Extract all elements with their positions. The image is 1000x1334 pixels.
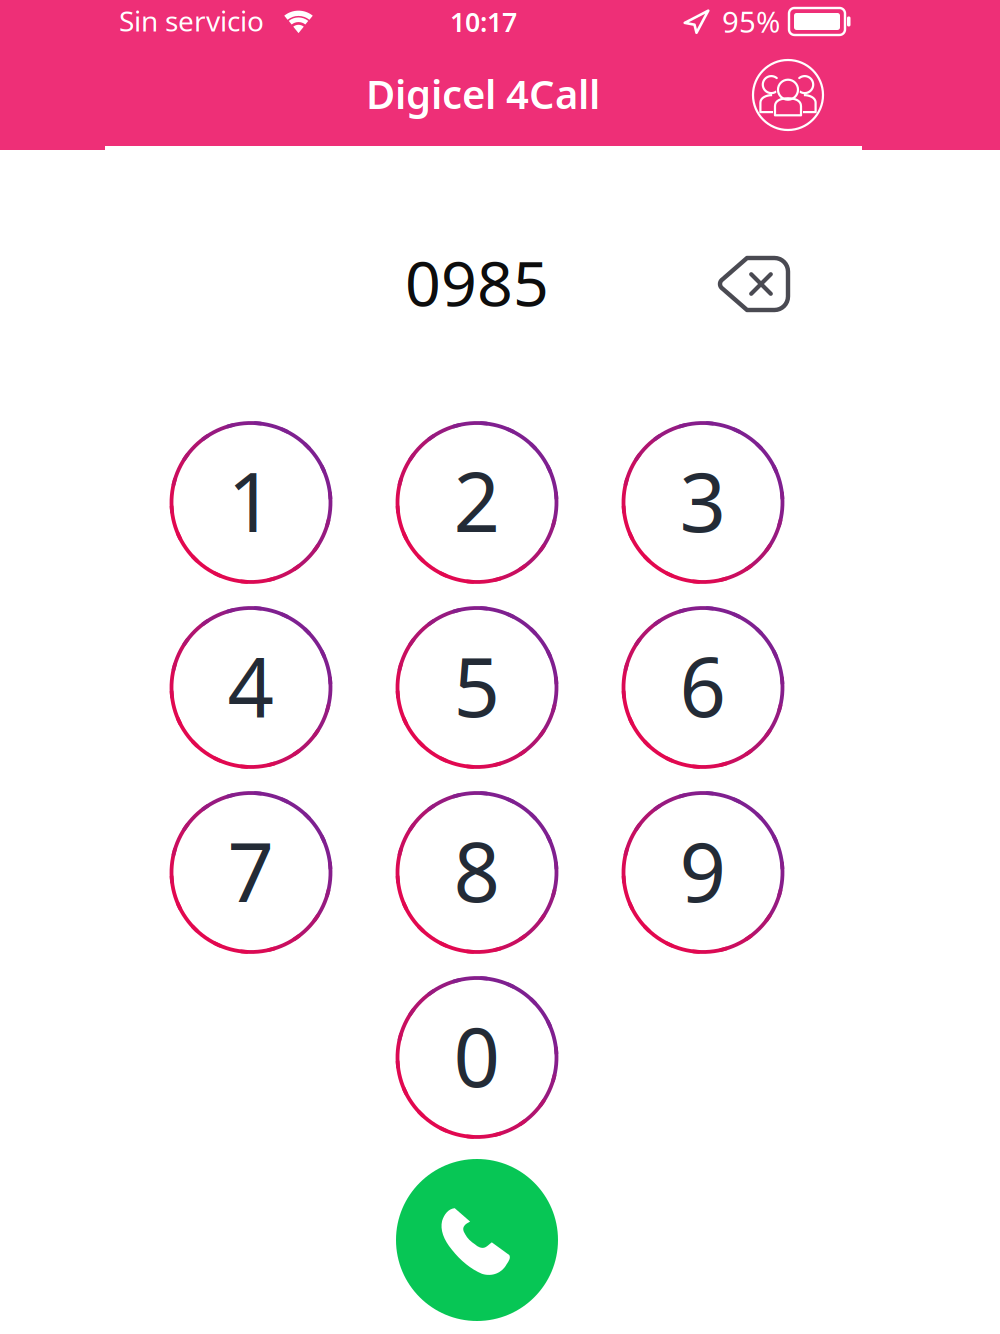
staticText: 5 xyxy=(453,631,500,739)
button[interactable]: Call xyxy=(364,1150,590,1324)
button[interactable]: Delete xyxy=(706,244,802,324)
staticText: 0985 xyxy=(405,240,549,324)
button[interactable]: 6 xyxy=(590,595,816,780)
staticText: 2 xyxy=(453,446,500,554)
staticText: 1 xyxy=(227,446,274,554)
staticText: 95% xyxy=(722,2,780,41)
staticText: 7 xyxy=(227,816,274,924)
button[interactable]: 8 xyxy=(364,780,590,965)
staticText: 6 xyxy=(679,631,726,739)
staticText: Digicel 4Call xyxy=(366,67,600,120)
button[interactable]: 1 xyxy=(138,410,364,595)
button[interactable]: 5 xyxy=(364,595,590,780)
staticText: 0 xyxy=(453,1001,500,1109)
staticText: 9 xyxy=(679,816,726,924)
button[interactable]: 2 xyxy=(364,410,590,595)
button[interactable]: 7 xyxy=(138,780,364,965)
staticText: 10:17 xyxy=(450,4,517,39)
button[interactable]: 9 xyxy=(590,780,816,965)
button[interactable]: 0 xyxy=(364,965,590,1150)
staticText: 3 xyxy=(679,446,726,554)
staticText: 4 xyxy=(227,631,274,739)
button[interactable]: 3 xyxy=(590,410,816,595)
staticText: 8 xyxy=(453,816,500,924)
button[interactable]: Contacts xyxy=(750,57,826,133)
button[interactable]: 4 xyxy=(138,595,364,780)
staticText: Sin servicio xyxy=(119,2,264,39)
